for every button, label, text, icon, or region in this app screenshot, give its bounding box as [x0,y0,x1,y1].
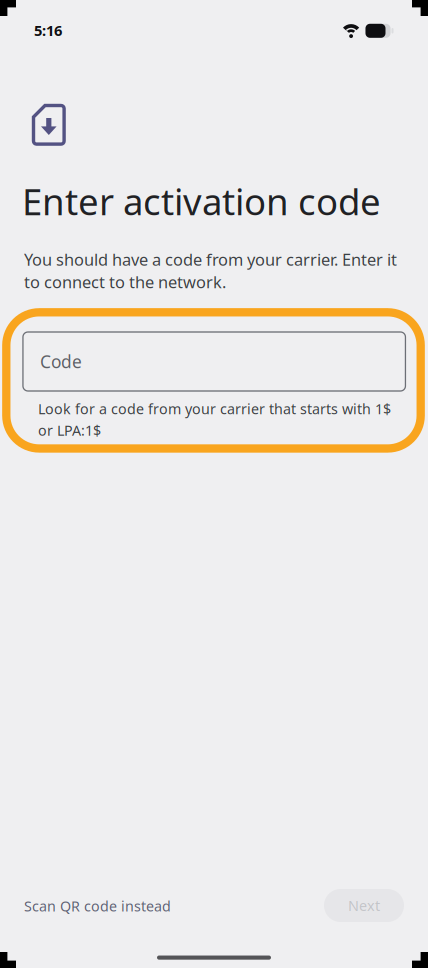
staticText: Look for a code from your carrier that s… [38,399,391,440]
staticText: 5:16 [34,20,62,40]
button[interactable]: Code [23,332,405,391]
staticText: Code [40,350,82,373]
staticText: Enter activation code [22,176,381,226]
button[interactable]: Next [324,889,404,922]
button[interactable]: Scan QR code instead [24,889,174,923]
staticText: You should have a code from your carrier… [24,248,397,293]
staticText: Scan QR code instead [24,896,171,916]
staticText: Next [348,896,380,915]
